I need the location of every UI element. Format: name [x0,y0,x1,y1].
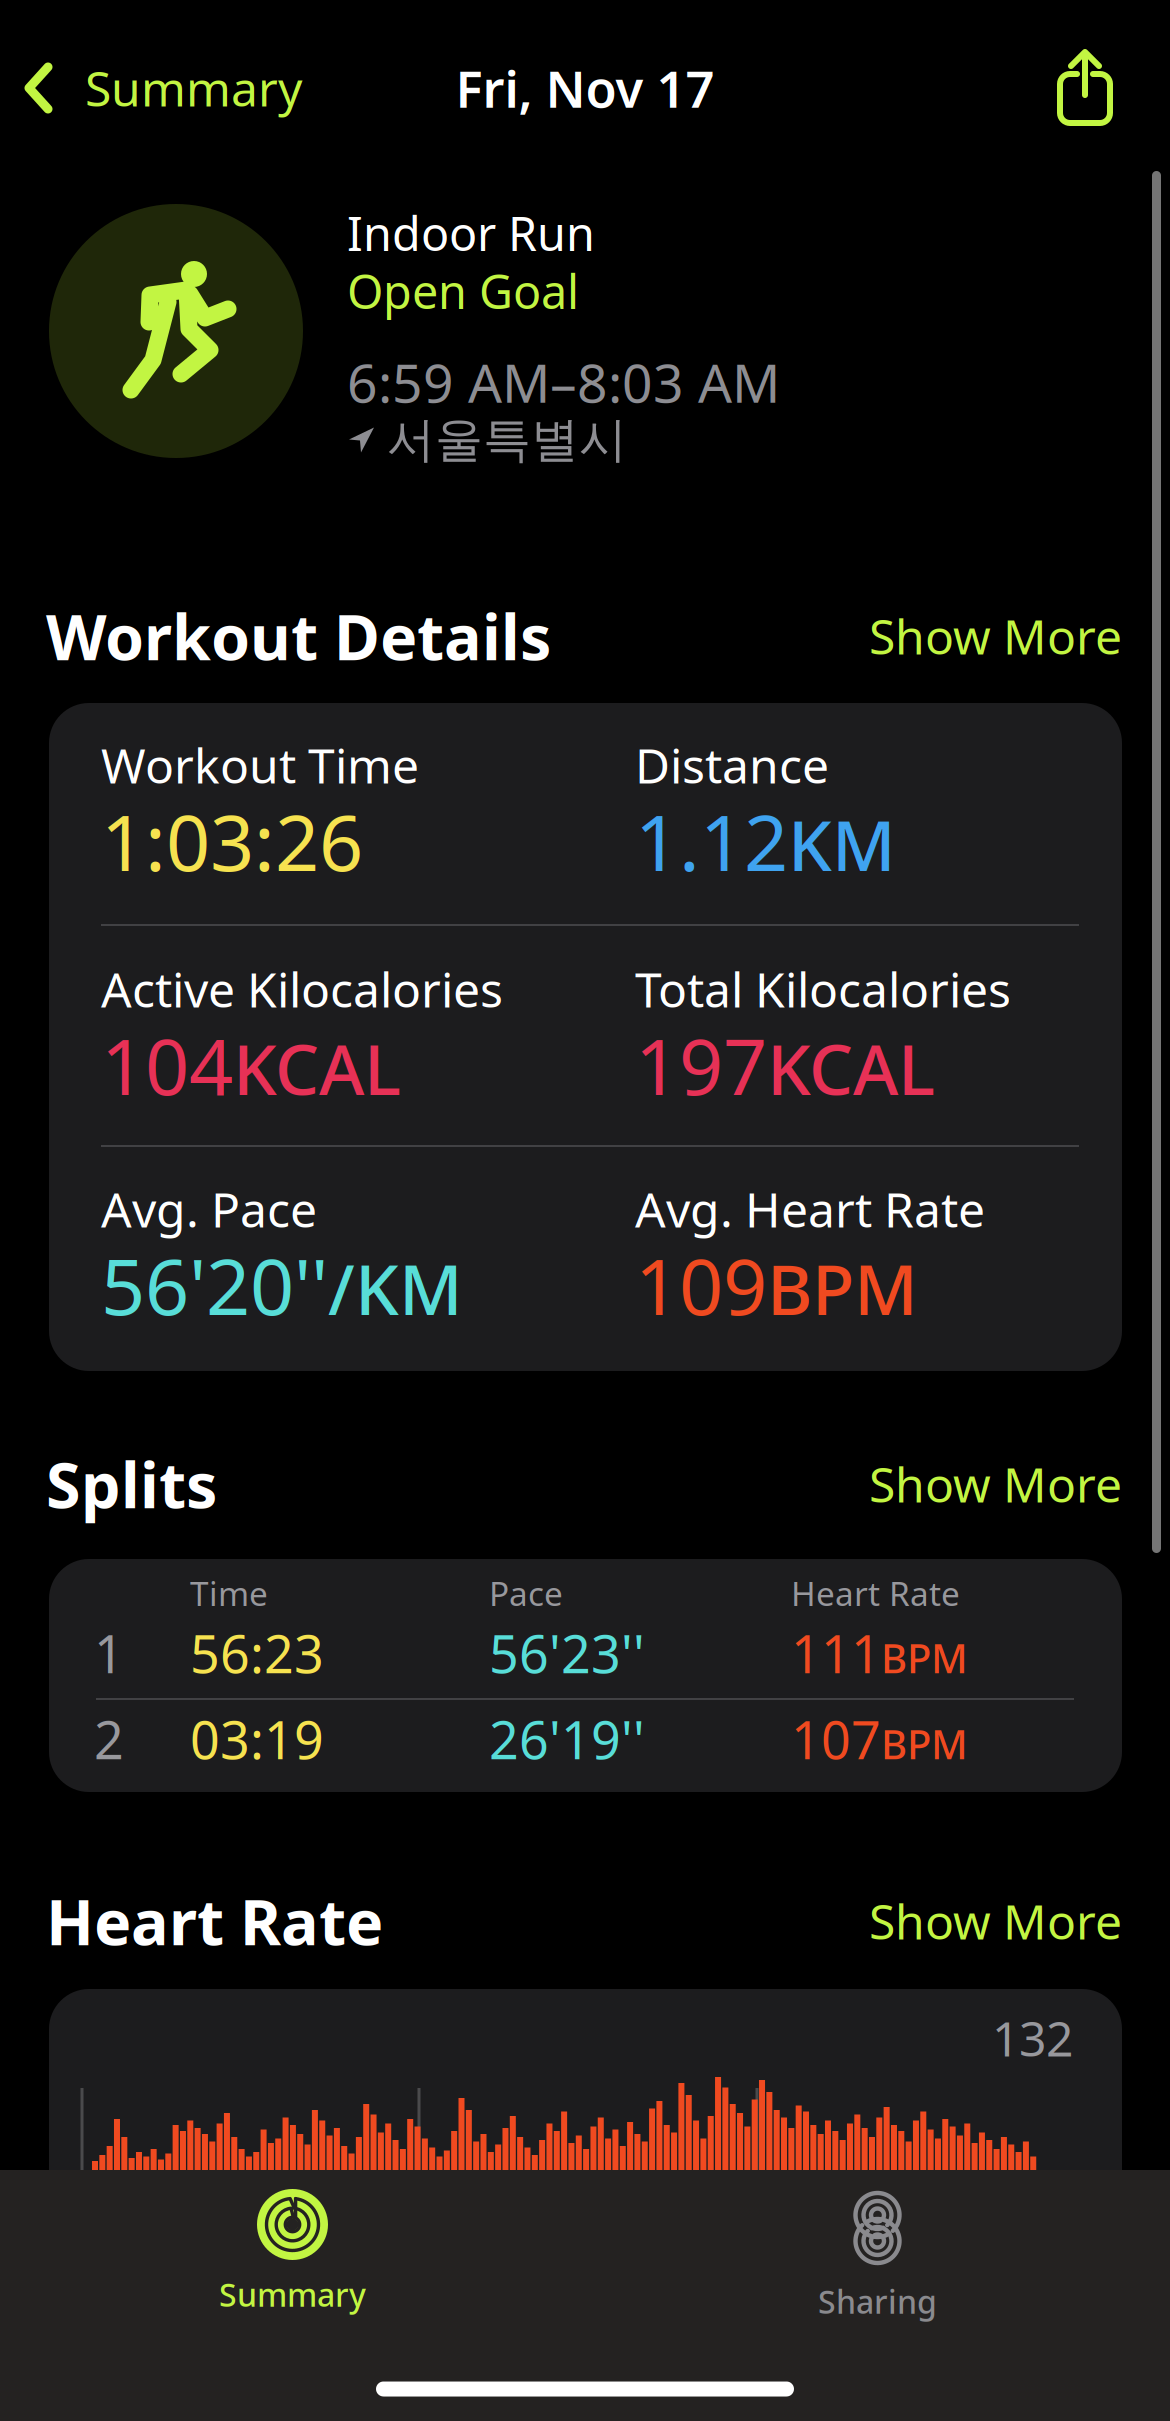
staticText: 111 [791,1618,881,1688]
staticText: 1 [94,1618,124,1688]
staticText: Heart Rate [791,1571,960,1615]
staticText: 1.12 [635,790,788,892]
staticText: Show More [869,1452,1122,1516]
staticText: Sharing [818,2280,937,2322]
staticText: 서울특별시 [387,410,627,469]
staticText: 03:19 [190,1704,324,1774]
button[interactable]: Show More [869,1879,1122,1963]
staticText: BPM [881,1631,968,1684]
staticText: 107 [791,1704,881,1774]
button[interactable]: Share [1027,0,1170,176]
button[interactable]: Show More [869,594,1122,678]
staticText: Summary [219,2273,366,2315]
staticText: 56'20'' [101,1234,328,1336]
staticText: Workout Details [46,594,551,678]
staticText: Fri, Nov 17 [455,54,714,122]
staticText: 26'19'' [489,1704,645,1774]
staticText: Active Kilocalories [101,957,503,1021]
staticText: Summary [85,56,302,120]
button[interactable]: Summary [0,0,326,176]
staticText: 197 [635,1014,767,1116]
staticText: KCAL [233,1022,401,1114]
staticText: 104 [101,1014,233,1116]
staticText: 6:59 AM–8:03 AM [347,347,780,417]
staticText: 109 [635,1234,767,1336]
button[interactable]: Show More [869,1442,1122,1526]
staticText: 56:23 [190,1618,324,1688]
staticText: Avg. Pace [101,1177,317,1241]
staticText: 56'23'' [489,1618,645,1688]
staticText: Open Goal [347,260,579,322]
staticText: Heart Rate [46,1879,383,1963]
staticText: 1:03:26 [101,790,363,892]
staticText: Workout Time [101,733,419,797]
staticText: Avg. Heart Rate [635,1177,985,1241]
staticText: 132 [992,2006,1073,2070]
staticText: Total Kilocalories [635,957,1011,1021]
staticText: Indoor Run [347,202,595,264]
staticText: /KM [328,1242,463,1334]
staticText: Show More [869,1889,1122,1953]
staticText: Splits [46,1442,217,1526]
staticText: BPM [767,1242,918,1334]
button[interactable]: Sharing [585,2189,1170,2351]
staticText: Distance [635,733,829,797]
staticText: Show More [869,604,1122,668]
staticText: KCAL [767,1022,935,1114]
staticText: Time [190,1571,268,1615]
staticText: 2 [94,1704,124,1774]
staticText: KM [788,798,896,890]
staticText: BPM [881,1717,968,1770]
staticText: Pace [489,1571,563,1615]
button[interactable]: Summary [0,2189,585,2351]
